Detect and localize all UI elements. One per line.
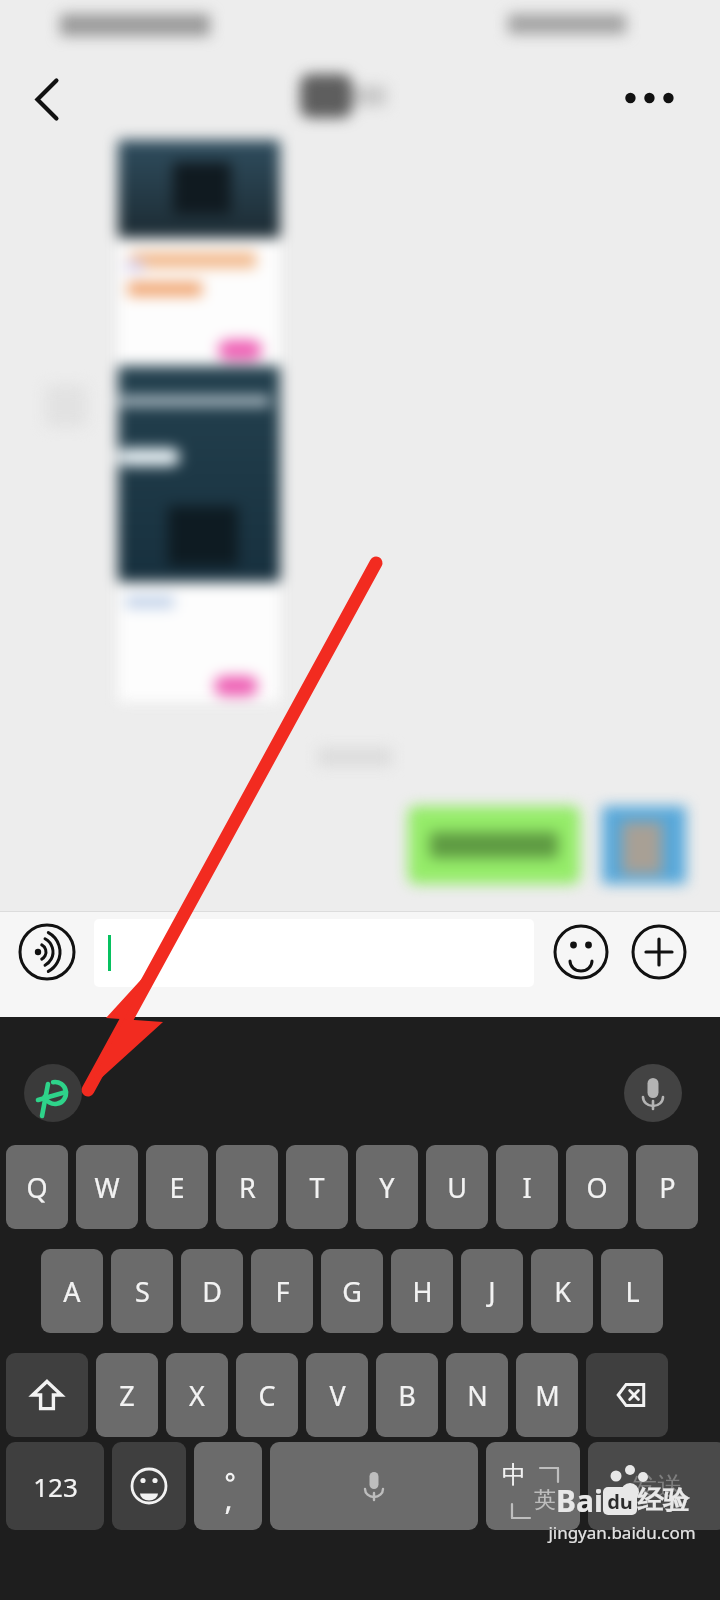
staticText: B bbox=[398, 1377, 416, 1414]
staticText: Y bbox=[379, 1169, 395, 1206]
button[interactable]: F bbox=[251, 1249, 313, 1333]
button[interactable]: 发送 bbox=[588, 1442, 720, 1530]
button[interactable]: Shift bbox=[6, 1353, 88, 1437]
staticText: X bbox=[189, 1377, 205, 1414]
button[interactable]: B bbox=[376, 1353, 438, 1437]
button[interactable]: H bbox=[391, 1249, 453, 1333]
button[interactable]: G bbox=[321, 1249, 383, 1333]
button[interactable]: I bbox=[496, 1145, 558, 1229]
staticText: 发送 bbox=[631, 1470, 683, 1503]
button[interactable]: T bbox=[286, 1145, 348, 1229]
staticText: , bbox=[224, 1478, 233, 1519]
button[interactable]: V bbox=[306, 1353, 368, 1437]
staticText: 中 bbox=[502, 1460, 526, 1490]
staticText: T bbox=[309, 1169, 325, 1206]
button[interactable]: Backspace bbox=[586, 1353, 668, 1437]
staticText: Bai bbox=[556, 1480, 603, 1521]
staticText: G bbox=[342, 1273, 362, 1310]
staticText: N bbox=[467, 1377, 488, 1414]
button[interactable]: R bbox=[216, 1145, 278, 1229]
staticText: O bbox=[586, 1169, 608, 1206]
button[interactable]: N bbox=[446, 1353, 508, 1437]
button[interactable]: O bbox=[566, 1145, 628, 1229]
button[interactable]: X bbox=[166, 1353, 228, 1437]
staticText: A bbox=[63, 1273, 81, 1310]
staticText: 英 bbox=[534, 1486, 556, 1514]
staticText: H bbox=[412, 1273, 433, 1310]
button[interactable]: M bbox=[516, 1353, 578, 1437]
button[interactable]: Switch Chinese English bbox=[486, 1442, 580, 1530]
staticText: jingyan.baidu.com bbox=[548, 1521, 696, 1544]
staticText: F bbox=[275, 1273, 290, 1310]
staticText: du bbox=[607, 1488, 633, 1515]
button[interactable]: Z bbox=[96, 1353, 158, 1437]
button[interactable]: A bbox=[41, 1249, 103, 1333]
staticText: W bbox=[94, 1169, 120, 1206]
staticText: K bbox=[554, 1273, 571, 1310]
button[interactable]: E bbox=[146, 1145, 208, 1229]
staticText: M bbox=[535, 1377, 560, 1414]
staticText: Q bbox=[26, 1169, 48, 1206]
button[interactable]: Voice input bbox=[18, 923, 76, 981]
button[interactable]: More options bbox=[612, 62, 684, 134]
button[interactable]: K bbox=[531, 1249, 593, 1333]
button[interactable]: J bbox=[461, 1249, 523, 1333]
staticText: P bbox=[659, 1169, 676, 1206]
button[interactable]: Input method settings bbox=[24, 1064, 82, 1122]
button[interactable]: Back bbox=[10, 62, 82, 134]
staticText: 经验 bbox=[637, 1484, 689, 1517]
button[interactable]: Y bbox=[356, 1145, 418, 1229]
staticText: 123 bbox=[33, 1469, 78, 1504]
button[interactable] bbox=[94, 919, 534, 987]
staticText: U bbox=[447, 1169, 467, 1206]
button[interactable]: W bbox=[76, 1145, 138, 1229]
staticText: V bbox=[329, 1377, 346, 1414]
button[interactable]: More functions bbox=[630, 923, 688, 981]
button[interactable]: S bbox=[111, 1249, 173, 1333]
staticText: I bbox=[522, 1169, 532, 1206]
staticText: C bbox=[258, 1377, 276, 1414]
button[interactable]: 123 bbox=[6, 1442, 104, 1530]
staticText: L bbox=[625, 1273, 640, 1310]
button[interactable]: Emoji bbox=[552, 923, 610, 981]
button[interactable]: P bbox=[636, 1145, 698, 1229]
staticText: Z bbox=[119, 1377, 135, 1414]
button[interactable]: Voice bbox=[624, 1064, 682, 1122]
button[interactable]: U bbox=[426, 1145, 488, 1229]
button[interactable]: D bbox=[181, 1249, 243, 1333]
staticText: R bbox=[239, 1169, 256, 1206]
staticText: J bbox=[488, 1273, 496, 1310]
button[interactable]: Space bbox=[270, 1442, 478, 1530]
button[interactable]: Emoji bbox=[112, 1442, 186, 1530]
staticText: D bbox=[202, 1273, 222, 1310]
button[interactable]: C bbox=[236, 1353, 298, 1437]
button[interactable]: L bbox=[601, 1249, 663, 1333]
staticText: E bbox=[169, 1169, 185, 1206]
button[interactable]: Punctuation bbox=[194, 1442, 262, 1530]
button[interactable]: Q bbox=[6, 1145, 68, 1229]
staticText: S bbox=[135, 1273, 150, 1310]
